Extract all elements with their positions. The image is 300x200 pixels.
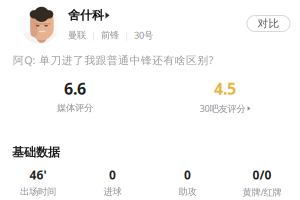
staticText: 媒体评分: [57, 102, 93, 114]
staticText: 助攻: [178, 186, 196, 197]
staticText: 出场时间: [20, 186, 56, 197]
button[interactable]: 4.5: [150, 78, 300, 115]
staticText: 进球: [103, 186, 121, 197]
staticText: |: [91, 29, 96, 41]
staticText: 4.5: [214, 78, 236, 99]
staticText: 舍什科: [68, 8, 104, 23]
staticText: 曼联: [68, 29, 86, 41]
staticText: 30号: [134, 29, 153, 41]
staticText: |: [124, 29, 129, 41]
button[interactable]: 舍什科: [68, 8, 109, 23]
staticText: 30吧友评分: [199, 102, 245, 115]
staticText: 基础数据: [12, 145, 60, 160]
staticText: 前锋: [101, 29, 119, 41]
staticText: 黄牌/红牌: [242, 186, 281, 198]
staticText: 6.6: [64, 78, 86, 99]
button[interactable]: 对比: [247, 15, 290, 31]
staticText: 0: [184, 167, 191, 183]
staticText: 阿Q: 单刀进了我跟普通中锋还有啥区别?: [13, 53, 214, 67]
staticText: 对比: [257, 17, 279, 30]
staticText: 0: [109, 167, 116, 183]
staticText: 46': [29, 167, 46, 183]
staticText: 0/0: [252, 167, 271, 183]
